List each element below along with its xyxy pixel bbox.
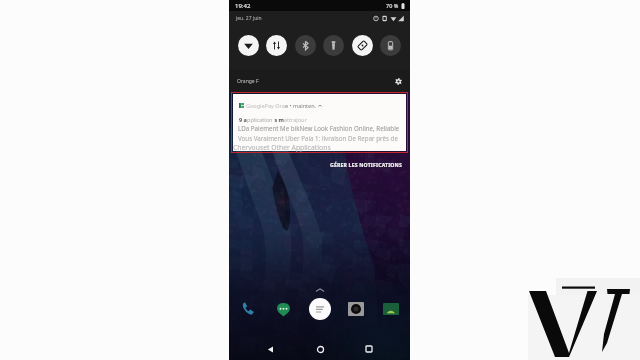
staticText: Chervouset Other Applications: [233, 143, 331, 152]
button[interactable]: Browser: [309, 298, 331, 320]
staticText: 9 a: [239, 116, 247, 123]
button[interactable]: Mobile data: [266, 35, 287, 56]
staticText: jeu. 27 juin: [236, 15, 262, 22]
button[interactable]: Home: [311, 340, 329, 358]
button[interactable]: Phone: [238, 299, 258, 319]
staticText: e • mainten.: [285, 102, 317, 109]
staticText: Orange F: [237, 78, 259, 85]
staticText: pplication: [247, 116, 273, 123]
button[interactable]: Settings: [392, 75, 404, 87]
staticText: Vous Varaiment Uber Pala 1: livraison De…: [238, 134, 398, 142]
staticText: GÉRER LES NOTIFICATIONS: [330, 161, 402, 168]
staticText: 70 %: [386, 2, 399, 9]
button[interactable]: Flashlight: [323, 35, 344, 56]
button[interactable]: Gallery: [381, 299, 401, 319]
button[interactable]: Wi-Fi: [238, 35, 259, 56]
button[interactable]: Auto rotate: [352, 35, 373, 56]
button[interactable]: GooglePay Ora: [233, 94, 406, 151]
button[interactable]: Camera: [346, 299, 366, 319]
staticText: LDa Paiement Me bikNew Look Fashion Onli…: [238, 124, 400, 132]
staticText: s m: [273, 116, 284, 123]
button[interactable]: Back: [261, 340, 279, 358]
staticText: GooglePay Ora: [246, 102, 285, 109]
button[interactable]: Messages: [273, 299, 293, 319]
staticText: 19:42: [235, 2, 251, 10]
button[interactable]: Recents: [360, 340, 378, 358]
button[interactable]: Bluetooth: [295, 35, 316, 56]
button[interactable]: Battery saver: [380, 35, 401, 56]
staticText: ettrajour: [284, 116, 307, 123]
